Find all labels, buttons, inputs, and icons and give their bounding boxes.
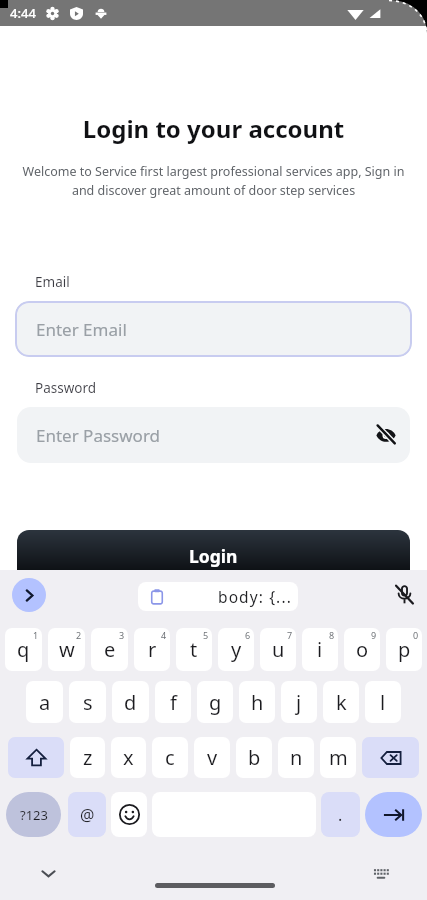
button[interactable]: j xyxy=(281,681,317,723)
button[interactable]: Backspace xyxy=(362,737,419,778)
staticText: v xyxy=(207,744,218,771)
button[interactable]: ?123 xyxy=(6,792,61,837)
staticText: Email xyxy=(35,273,70,291)
staticText: o xyxy=(356,636,369,663)
button[interactable]: body: {... xyxy=(138,582,298,611)
button[interactable]: s xyxy=(69,681,106,723)
staticText: f xyxy=(170,689,177,716)
button[interactable]: b xyxy=(236,737,272,778)
staticText: s xyxy=(83,689,93,716)
staticText: z xyxy=(83,744,93,771)
staticText: e xyxy=(104,636,116,663)
button[interactable]: . xyxy=(321,792,360,837)
button[interactable]: x xyxy=(111,737,146,778)
staticText: l xyxy=(380,689,386,716)
button[interactable]: Expand toolbar xyxy=(12,578,46,612)
button[interactable]: r xyxy=(134,628,170,671)
staticText: 3 xyxy=(119,629,125,641)
button[interactable]: Toggle password visibility xyxy=(370,419,402,451)
staticText: Login to your account xyxy=(0,112,427,145)
button[interactable]: g xyxy=(197,681,233,723)
button[interactable]: Next xyxy=(365,792,422,837)
button[interactable]: h xyxy=(239,681,275,723)
button[interactable]: @ xyxy=(68,792,106,837)
staticText: a xyxy=(39,689,51,716)
staticText: x xyxy=(123,744,134,771)
button[interactable]: k xyxy=(323,681,359,723)
staticText: 4 xyxy=(161,629,167,641)
staticText: c xyxy=(165,744,175,771)
staticText: n xyxy=(290,744,303,771)
staticText: 1 xyxy=(33,629,39,641)
button[interactable]: w xyxy=(48,628,85,671)
staticText: q xyxy=(17,636,30,663)
button[interactable]: p xyxy=(386,628,422,671)
staticText: Login xyxy=(189,544,238,568)
staticText: Welcome to Service first largest profess… xyxy=(18,163,409,199)
button[interactable]: t xyxy=(176,628,212,671)
staticText: 0 xyxy=(413,629,419,641)
staticText: ?123 xyxy=(20,806,48,824)
staticText: @ xyxy=(80,804,95,826)
staticText: 2 xyxy=(76,629,82,641)
staticText: 9 xyxy=(371,629,377,641)
staticText: Enter Email xyxy=(36,318,127,341)
staticText: Password xyxy=(35,379,97,397)
staticText: b xyxy=(248,744,261,771)
staticText: j xyxy=(296,689,302,716)
button[interactable]: z xyxy=(70,737,105,778)
button[interactable]: Enter Password xyxy=(17,407,410,463)
staticText: w xyxy=(59,636,75,663)
staticText: u xyxy=(272,636,285,663)
button[interactable]: c xyxy=(152,737,188,778)
button[interactable]: a xyxy=(26,681,63,723)
button[interactable]: Emoji xyxy=(111,792,147,837)
button[interactable]: d xyxy=(112,681,149,723)
button[interactable]: v xyxy=(194,737,230,778)
button[interactable]: n xyxy=(278,737,314,778)
button[interactable]: Login xyxy=(17,530,410,582)
button[interactable]: l xyxy=(365,681,401,723)
button[interactable]: Hide keyboard xyxy=(34,859,62,887)
staticText: 5 xyxy=(203,629,209,641)
staticText: 6 xyxy=(245,629,251,641)
staticText: k xyxy=(336,689,347,716)
staticText: i xyxy=(317,636,323,663)
button[interactable]: i xyxy=(302,628,338,671)
staticText: g xyxy=(209,689,222,716)
staticText: Enter Password xyxy=(36,424,161,447)
staticText: 7 xyxy=(287,629,293,641)
button[interactable]: Voice input off xyxy=(391,581,417,607)
button[interactable]: y xyxy=(218,628,254,671)
button[interactable]: q xyxy=(5,628,42,671)
staticText: t xyxy=(190,636,198,663)
button[interactable]: u xyxy=(260,628,296,671)
button[interactable]: e xyxy=(91,628,128,671)
staticText: 4:44 xyxy=(10,4,36,22)
staticText: p xyxy=(398,636,411,663)
staticText: body: {... xyxy=(218,586,292,607)
button[interactable]: Shift xyxy=(8,737,64,778)
button[interactable]: m xyxy=(320,737,356,778)
staticText: . xyxy=(338,804,343,826)
staticText: y xyxy=(231,636,242,663)
staticText: h xyxy=(251,689,264,716)
button[interactable]: f xyxy=(155,681,191,723)
button[interactable]: o xyxy=(344,628,380,671)
staticText: m xyxy=(329,744,348,771)
button[interactable]: Switch keyboard xyxy=(367,859,395,887)
staticText: r xyxy=(148,636,157,663)
staticText: d xyxy=(124,689,137,716)
staticText: 8 xyxy=(329,629,335,641)
button[interactable]: Enter Email xyxy=(15,301,412,357)
